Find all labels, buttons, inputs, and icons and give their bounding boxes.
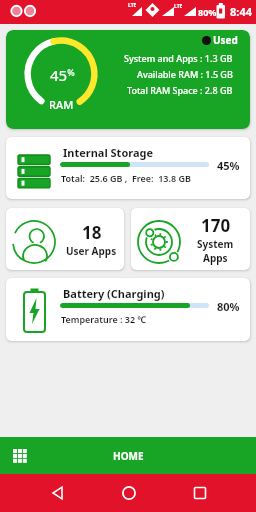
- staticText: User Apps: [66, 244, 117, 258]
- staticText: 8:44: [230, 4, 252, 19]
- staticText: System: [197, 237, 234, 251]
- button[interactable]: 18: [6, 208, 124, 270]
- staticText: Internal Storage: [63, 145, 154, 160]
- staticText: 80%: [198, 6, 217, 18]
- button[interactable]: HOME: [0, 437, 256, 474]
- button[interactable]: [121, 485, 137, 501]
- staticText: Total RAM Space : 2.8 GB: [127, 84, 233, 96]
- staticText: 18: [82, 221, 102, 244]
- staticText: 80%: [217, 299, 240, 314]
- button[interactable]: Internal Storage: [6, 137, 250, 199]
- button[interactable]: [50, 485, 66, 501]
- staticText: Total: 25.6 GB , Free: 13.8 GB: [61, 172, 191, 184]
- staticText: 170: [201, 214, 231, 237]
- staticText: HOME: [113, 449, 144, 463]
- staticText: LTE: [174, 3, 183, 10]
- button[interactable]: 170: [131, 208, 250, 270]
- staticText: Used: [213, 33, 238, 47]
- staticText: RAM: [49, 97, 74, 112]
- staticText: Apps: [203, 251, 228, 265]
- button[interactable]: [192, 485, 208, 501]
- button[interactable]: Battery (Charging): [6, 278, 250, 341]
- staticText: 45%: [50, 65, 75, 85]
- staticText: Temperature : 32 ℃: [61, 313, 147, 325]
- staticText: 45%: [217, 158, 240, 173]
- staticText: LTE: [128, 2, 137, 9]
- staticText: Battery (Charging): [63, 286, 165, 301]
- staticText: System and Apps : 1.3 GB: [124, 52, 233, 64]
- staticText: Available RAM : 1.5 GB: [137, 68, 233, 80]
- button[interactable]: 45%: [6, 30, 250, 129]
